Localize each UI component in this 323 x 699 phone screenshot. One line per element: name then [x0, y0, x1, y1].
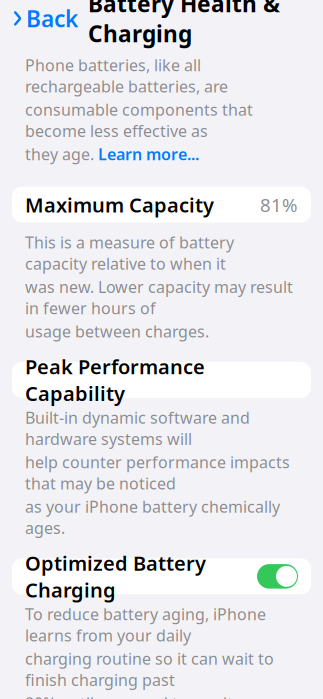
- staticText: usage between charges.: [25, 321, 209, 342]
- button[interactable]: Learn more...: [98, 143, 199, 165]
- staticText: To reduce battery aging, iPhone learns f…: [25, 603, 266, 646]
- staticText: Optimized Battery Charging: [25, 550, 206, 603]
- staticText: Maximum Capacity: [25, 191, 214, 218]
- button[interactable]: Peak Performance Capability: [12, 362, 311, 398]
- staticText: consumable components that become less e…: [25, 99, 253, 141]
- staticText: Learn more...: [98, 143, 199, 165]
- staticText: Back: [26, 3, 78, 33]
- staticText: was new. Lower capacity may result in fe…: [25, 276, 293, 319]
- staticText: 81%: [260, 192, 298, 217]
- staticText: Battery Health & Charging: [88, 0, 280, 48]
- staticText: Built-in dynamic software and hardware s…: [25, 407, 250, 449]
- staticText: help counter performance impacts that ma…: [25, 451, 290, 494]
- staticText: Peak Performance Capability: [25, 353, 205, 406]
- staticText: they age.: [25, 143, 98, 165]
- button[interactable]: Maximum Capacity: [12, 187, 311, 223]
- staticText: 80% until you need to use it.: [25, 692, 237, 699]
- staticText: This is a measure of battery capacity re…: [25, 232, 234, 274]
- staticText: as your iPhone battery chemically ages.: [25, 496, 280, 538]
- button[interactable]: Optimized Battery Charging: [12, 558, 311, 594]
- staticText: charging routine so it can wait to finis…: [25, 648, 274, 690]
- button[interactable]: Back: [12, 0, 78, 37]
- staticText: Phone batteries, like all rechargeable b…: [25, 54, 228, 97]
